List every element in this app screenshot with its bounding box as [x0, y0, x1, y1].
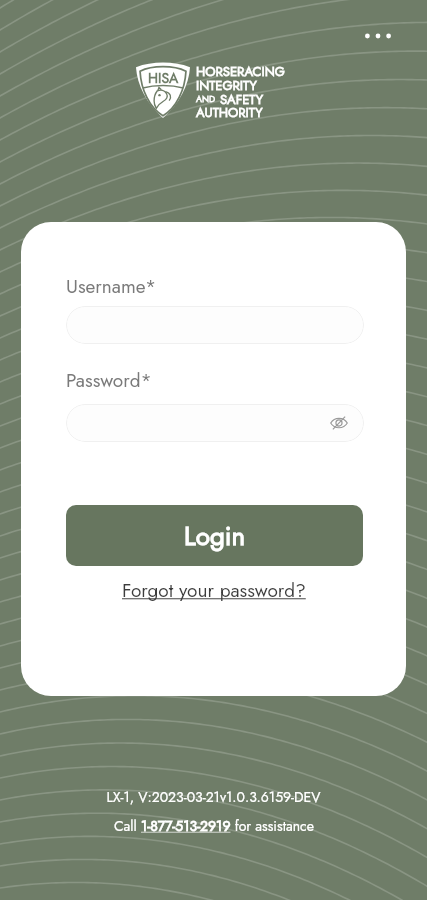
button[interactable]: Login: [66, 505, 363, 566]
staticText: AND: [196, 92, 216, 105]
button[interactable]: Show password: [328, 412, 350, 434]
button[interactable]: More options: [355, 22, 401, 50]
staticText: HORSERACING: [196, 62, 285, 81]
staticText: HISA: [148, 68, 179, 88]
staticText: Login: [184, 517, 246, 555]
staticText: Password*: [66, 367, 152, 394]
staticText: INTEGRITY: [196, 76, 257, 95]
staticText: AUTHORITY: [196, 103, 263, 122]
button[interactable]: Show password: [66, 404, 364, 442]
staticText: SAFETY: [220, 90, 264, 109]
staticText: Username*: [66, 273, 157, 300]
button[interactable]: Forgot your password?: [122, 577, 306, 604]
button[interactable]: Call 1-877-513-2919 for assistance: [114, 816, 314, 836]
staticText: LX-1, V:2023-03-21v1.0.3.6159-DEV: [106, 787, 321, 807]
